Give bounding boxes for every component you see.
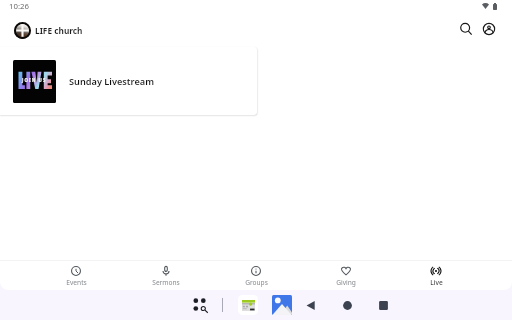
button[interactable]: Account — [474, 14, 504, 44]
button[interactable]: Giving — [301, 258, 391, 289]
staticText: Sunday Livestream — [69, 75, 154, 88]
button[interactable]: JOIN US — [0, 47, 257, 115]
staticText: JOIN US — [22, 77, 47, 83]
button[interactable]: Assistant — [191, 296, 209, 314]
staticText: Sermons — [152, 278, 180, 287]
button[interactable]: Recents — [378, 300, 389, 311]
button[interactable]: Groups — [211, 258, 301, 289]
button[interactable]: Photos — [272, 295, 292, 315]
staticText: Giving — [336, 278, 356, 287]
button[interactable]: Search — [451, 14, 481, 44]
button[interactable]: Recent app — [238, 295, 258, 315]
staticText: Events — [66, 278, 87, 287]
button[interactable]: Back — [305, 300, 316, 311]
button[interactable]: Events — [31, 258, 121, 289]
staticText: Groups — [245, 278, 268, 287]
button[interactable]: Sermons — [121, 258, 211, 289]
staticText: 10:26 — [9, 1, 29, 12]
button[interactable]: Home — [342, 300, 353, 311]
staticText: Live — [430, 278, 443, 287]
staticText: LIFE church — [35, 25, 83, 36]
button[interactable]: Live — [391, 258, 481, 289]
